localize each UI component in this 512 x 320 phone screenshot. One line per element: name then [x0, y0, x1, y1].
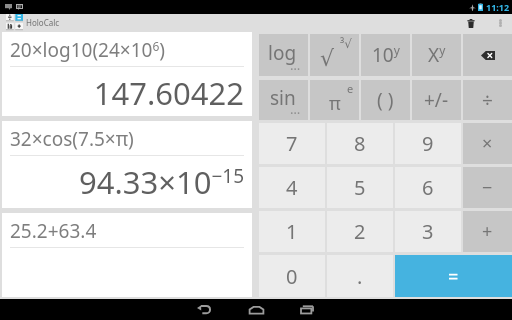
staticText: 0: [286, 263, 298, 290]
staticText: 20×log10(24×106): [10, 37, 166, 63]
button[interactable]: 9: [395, 123, 461, 164]
staticText: ³√: [340, 35, 352, 51]
staticText: ( ): [377, 87, 394, 113]
staticText: 4: [286, 174, 298, 201]
button[interactable]: ÷: [463, 80, 512, 120]
staticText: .: [357, 263, 363, 290]
staticText: +/-: [424, 87, 449, 113]
staticText: sin: [270, 85, 296, 111]
button[interactable]: 1: [259, 211, 325, 252]
staticText: 3: [422, 218, 434, 245]
staticText: 25.2+63.4: [10, 218, 97, 244]
staticText: 6: [422, 174, 434, 201]
button[interactable]: Recents: [288, 299, 326, 320]
staticText: 7: [286, 130, 298, 157]
button[interactable]: 8: [327, 123, 393, 164]
staticText: +: [482, 219, 493, 244]
button[interactable]: Backspace: [463, 34, 512, 76]
button[interactable]: Back: [185, 299, 223, 320]
staticText: 32×cos(7.5×π): [10, 126, 134, 152]
staticText: 94.33×10−15: [10, 161, 244, 203]
button[interactable]: 25.2+63.4: [2, 213, 252, 297]
button[interactable]: 6: [395, 167, 461, 208]
other: Backspace: [481, 51, 495, 60]
staticText: 147.60422: [10, 72, 244, 114]
staticText: 10y: [372, 42, 400, 68]
button[interactable]: Home: [237, 299, 275, 320]
button[interactable]: 0: [259, 255, 325, 297]
button[interactable]: 20×log10(24×106): [2, 32, 252, 116]
staticText: ÷: [482, 87, 493, 113]
staticText: 11:12: [486, 1, 510, 13]
staticText: =: [448, 264, 459, 289]
staticText: e: [347, 81, 354, 96]
staticText: 1: [286, 218, 298, 245]
staticText: Xy: [428, 42, 446, 68]
button[interactable]: 10y: [361, 34, 410, 76]
button[interactable]: −: [463, 167, 512, 208]
staticText: ×: [482, 131, 493, 156]
staticText: √: [320, 46, 335, 72]
staticText: 5: [354, 174, 366, 201]
button[interactable]: 32×cos(7.5×π): [2, 121, 252, 208]
staticText: −: [482, 175, 493, 200]
button[interactable]: log: [259, 34, 308, 76]
button[interactable]: ( ): [361, 80, 410, 120]
button[interactable]: 7: [259, 123, 325, 164]
staticText: HoloCalc: [26, 17, 60, 28]
staticText: 8: [354, 130, 366, 157]
staticText: 2: [354, 218, 366, 245]
button[interactable]: 2: [327, 211, 393, 252]
button[interactable]: 3: [395, 211, 461, 252]
button[interactable]: ×: [463, 123, 512, 164]
button[interactable]: +: [463, 211, 512, 252]
button[interactable]: More options: [488, 14, 512, 32]
staticText: log: [268, 40, 297, 66]
button[interactable]: Xy: [412, 34, 461, 76]
button[interactable]: sin: [259, 80, 308, 120]
button[interactable]: +/-: [412, 80, 461, 120]
button[interactable]: Clear history: [454, 14, 488, 32]
button[interactable]: =: [395, 255, 512, 297]
button[interactable]: 5: [327, 167, 393, 208]
staticText: 9: [422, 130, 434, 157]
staticText: …: [290, 56, 301, 74]
button[interactable]: 4: [259, 167, 325, 208]
staticText: …: [290, 100, 301, 118]
button[interactable]: √: [310, 34, 359, 76]
button[interactable]: .: [327, 255, 393, 297]
button[interactable]: π: [310, 80, 359, 120]
staticText: π: [329, 91, 341, 116]
